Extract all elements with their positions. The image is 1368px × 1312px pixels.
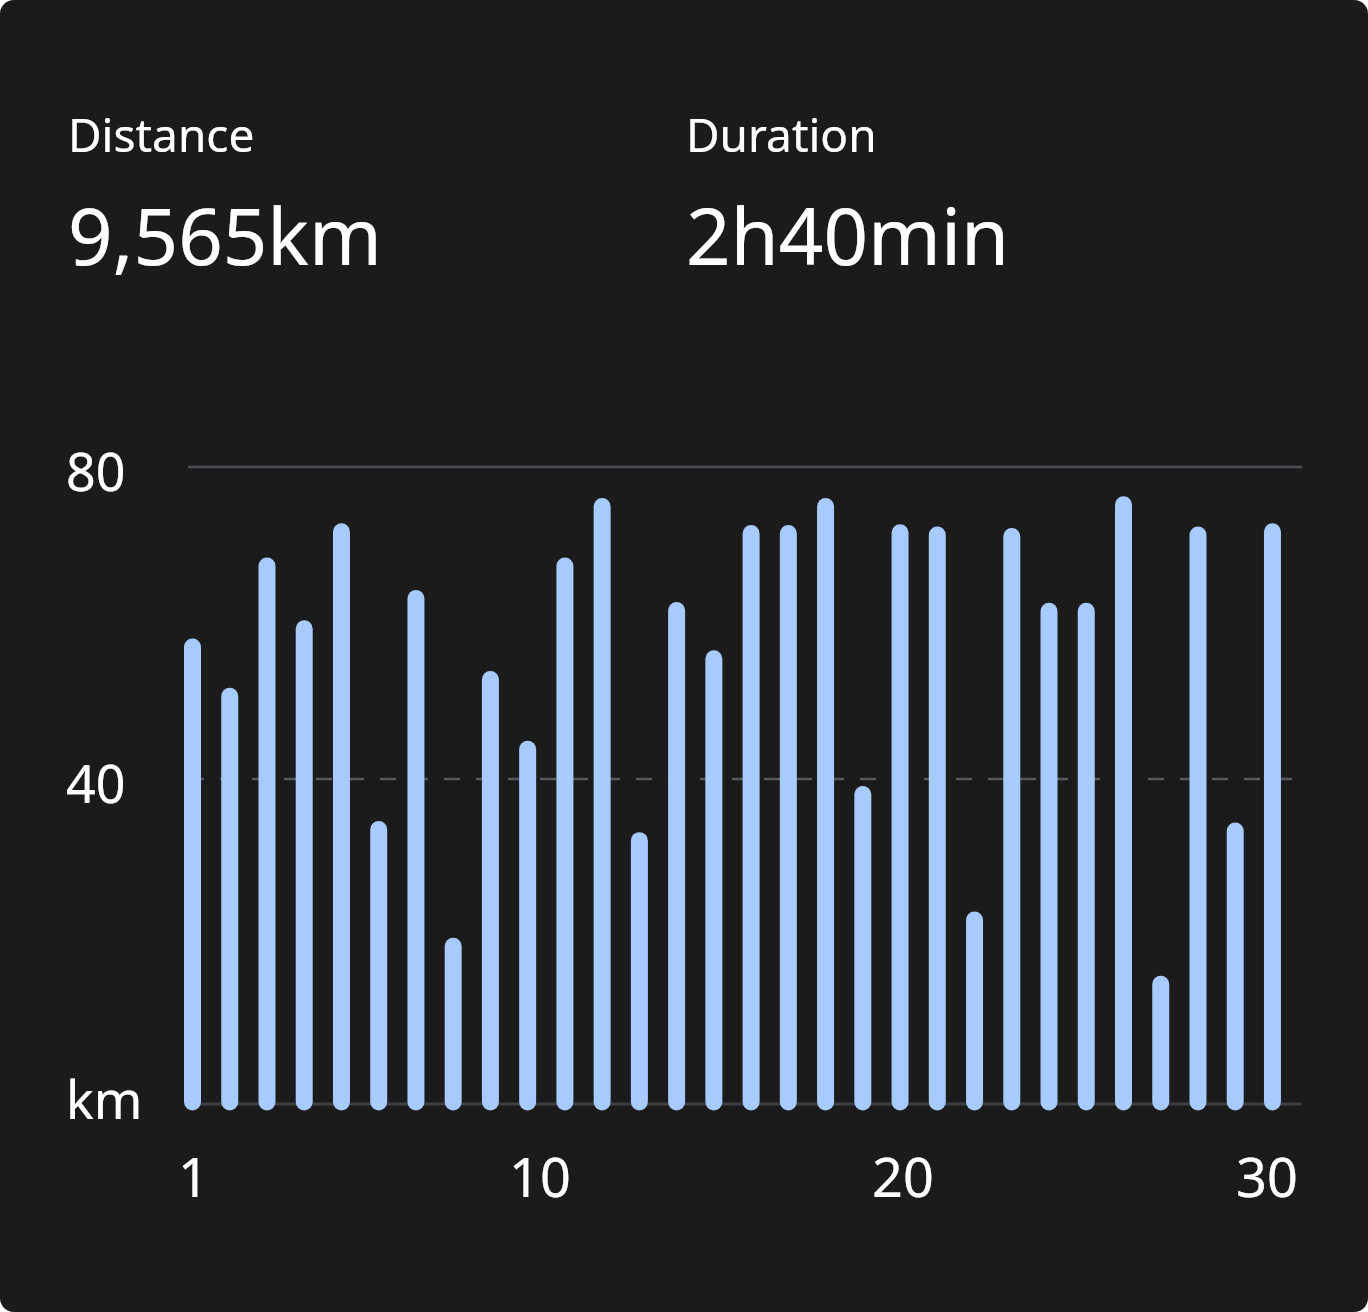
- staticText: 2h40min: [686, 182, 1010, 288]
- staticText: 9,565km: [68, 182, 382, 288]
- staticText: 30: [1236, 1139, 1298, 1213]
- button[interactable]: [0, 0, 1368, 1312]
- button[interactable]: Duration: [686, 103, 1010, 272]
- staticText: 40: [66, 747, 126, 818]
- staticText: 80: [66, 435, 126, 506]
- staticText: 20: [872, 1139, 934, 1213]
- button[interactable]: Distance: [68, 103, 382, 272]
- staticText: 10: [509, 1139, 571, 1213]
- staticText: km: [66, 1063, 143, 1134]
- staticText: 1: [178, 1139, 209, 1213]
- staticText: Duration: [686, 103, 877, 166]
- staticText: Distance: [68, 103, 255, 166]
